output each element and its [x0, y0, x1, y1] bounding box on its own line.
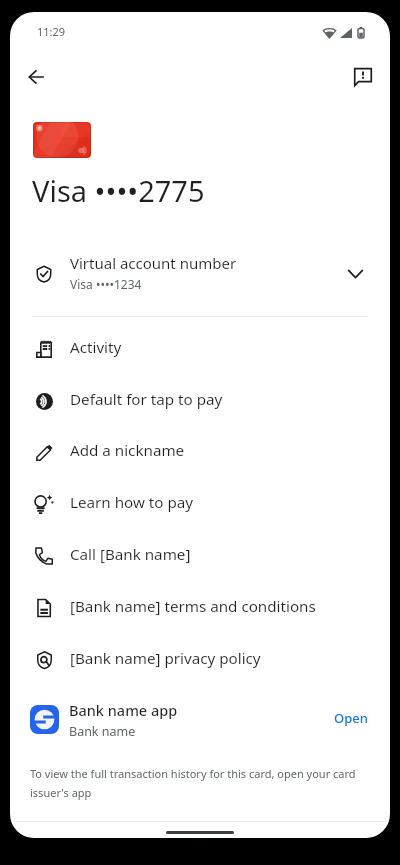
button[interactable]: Open: [325, 701, 377, 735]
button[interactable]: Bank name app: [10, 702, 390, 750]
staticText: Virtual account number: [70, 253, 237, 273]
button[interactable]: Learn how to pay: [10, 478, 390, 529]
staticText: Visa ••••2775: [32, 171, 205, 210]
staticText: [Bank name] privacy policy: [70, 648, 261, 669]
staticText: Call [Bank name]: [70, 544, 191, 565]
button[interactable]: Send feedback: [343, 57, 383, 97]
staticText: Visa ••••1234: [70, 276, 142, 292]
staticText: To view the full transaction history for…: [30, 766, 388, 800]
staticText: Bank name: [69, 723, 136, 740]
staticText: 11:29: [37, 24, 66, 39]
staticText: [Bank name] terms and conditions: [70, 596, 316, 617]
other: Expand: [348, 266, 363, 282]
button[interactable]: [Bank name] privacy policy: [10, 634, 390, 685]
staticText: Learn how to pay: [70, 492, 194, 513]
button[interactable]: Virtual account number: [10, 240, 390, 302]
button[interactable]: [Bank name] terms and conditions: [10, 582, 390, 633]
staticText: Activity: [70, 337, 122, 358]
button[interactable]: Add a nickname: [10, 426, 390, 477]
button[interactable]: Call [Bank name]: [10, 530, 390, 581]
staticText: Default for tap to pay: [70, 389, 223, 410]
button[interactable]: Back: [16, 57, 56, 97]
button[interactable]: Default for tap to pay: [10, 375, 390, 426]
staticText: Add a nickname: [70, 440, 185, 461]
button[interactable]: Activity: [10, 323, 390, 374]
staticText: Bank name app: [69, 700, 178, 720]
staticText: Open: [334, 709, 368, 727]
